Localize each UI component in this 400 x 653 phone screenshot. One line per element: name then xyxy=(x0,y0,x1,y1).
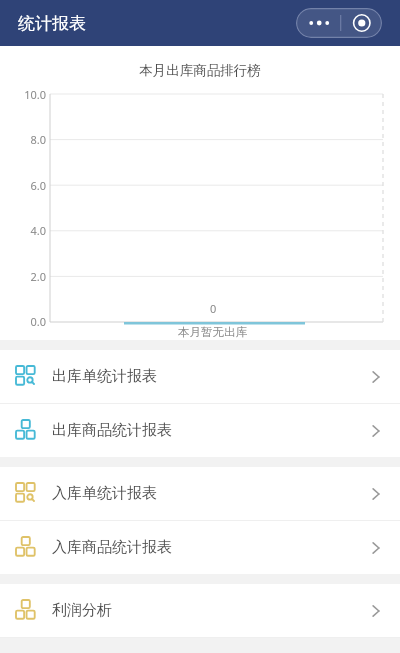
button[interactable]: More and close menu xyxy=(296,8,382,38)
staticText: 2.0 xyxy=(30,269,46,284)
button[interactable]: 出库商品统计报表 xyxy=(0,404,400,457)
staticText: 10.0 xyxy=(24,87,46,102)
staticText: 0.0 xyxy=(30,314,46,329)
staticText: 8.0 xyxy=(30,132,46,147)
staticText: 4.0 xyxy=(30,223,46,238)
staticText: 入库单统计报表 xyxy=(52,484,368,503)
button[interactable]: 利润分析 xyxy=(0,584,400,637)
staticText: 本月暂无出库 xyxy=(178,325,247,339)
staticText: 出库单统计报表 xyxy=(52,367,368,386)
staticText: 入库商品统计报表 xyxy=(52,538,368,557)
staticText: 出库商品统计报表 xyxy=(52,421,368,440)
button[interactable]: 入库单统计报表 xyxy=(0,467,400,520)
staticText: 利润分析 xyxy=(52,601,368,620)
staticText: 6.0 xyxy=(30,178,46,193)
button[interactable]: 入库商品统计报表 xyxy=(0,521,400,574)
button[interactable]: 出库单统计报表 xyxy=(0,350,400,403)
staticText: 统计报表 xyxy=(18,13,86,34)
staticText: 0 xyxy=(210,301,217,316)
staticText: 本月出库商品排行榜 xyxy=(139,62,261,79)
